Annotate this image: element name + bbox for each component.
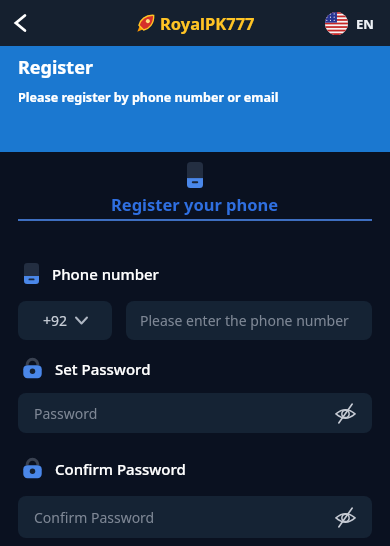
staticText: Please register by phone number or email [18,89,279,106]
staticText: Register your phone [111,193,279,215]
staticText: Confirm Password [55,459,186,479]
button[interactable]: Please enter the phone number [126,301,372,340]
staticText: Please enter the phone number [140,311,349,330]
button[interactable]: +92 [18,301,112,340]
button[interactable]: Register your phone [0,193,390,215]
button[interactable] [0,0,40,46]
staticText: +92 [43,311,68,330]
button[interactable]: EN [325,12,374,35]
staticText: Password [34,404,98,423]
button[interactable]: Password [18,393,372,433]
staticText: Phone number [52,264,159,284]
staticText: Register [18,55,93,80]
staticText: EN [356,15,374,33]
staticText: RoyalPK777 [160,12,255,34]
button[interactable]: Confirm Password [18,496,372,538]
staticText: Confirm Password [34,508,155,527]
staticText: Set Password [55,359,151,379]
